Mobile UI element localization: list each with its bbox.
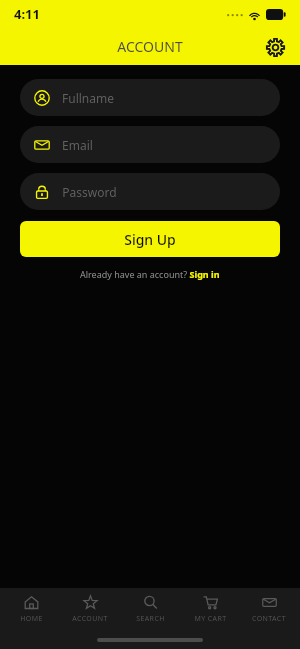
staticText: ACCOUNT	[117, 37, 183, 56]
button[interactable]: MY CART	[181, 592, 239, 627]
staticText: HOME	[20, 614, 43, 624]
button[interactable]: Settings	[260, 32, 290, 62]
staticText: ACCOUNT	[72, 614, 108, 624]
button[interactable]: Sign Up	[20, 221, 280, 257]
staticText: CONTACT	[252, 614, 286, 624]
button[interactable]: Email	[20, 126, 280, 163]
button[interactable]: Already have an account? Sign in	[76, 266, 224, 282]
staticText: Sign Up	[124, 230, 176, 249]
staticText: Password	[62, 184, 117, 200]
button[interactable]: Fullname	[20, 79, 280, 116]
button[interactable]: HOME	[2, 592, 60, 627]
staticText: MY CART	[194, 614, 227, 624]
staticText: SEARCH	[136, 614, 165, 624]
button[interactable]: CONTACT	[240, 592, 298, 627]
staticText: Already have an account? Sign in	[80, 268, 220, 280]
staticText: Email	[62, 137, 93, 153]
staticText: Fullname	[62, 90, 114, 106]
button[interactable]: SEARCH	[121, 592, 179, 627]
button[interactable]: ACCOUNT	[61, 592, 119, 627]
staticText: 4:11	[14, 5, 40, 23]
button[interactable]: Password	[20, 173, 280, 210]
